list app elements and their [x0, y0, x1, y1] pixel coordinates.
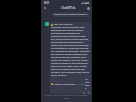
- staticText: Astuce : des sessions: [54, 83, 77, 86]
- staticText: courtes: [77, 83, 85, 86]
- staticText: Explique-moi la photosynthèse ?: [54, 13, 88, 16]
- staticText: Bien sûr ! Voici les: [54, 23, 73, 26]
- button[interactable]: Explique-moi la photosynthèse ?: [54, 13, 88, 16]
- button[interactable]: Profile: [87, 7, 90, 10]
- button[interactable]: Open menu: [43, 6, 47, 10]
- button[interactable]: Edit message: [88, 17, 90, 19]
- staticText: ChatGPT 4o: [61, 6, 76, 10]
- staticText: et régulières.: [85, 78, 90, 90]
- button[interactable]: Bien sûr ! Voici les: [51, 23, 90, 90]
- staticText: ChatGPT peut faire des erreurs. Envisage…: [44, 94, 89, 101]
- button[interactable]: Share: [87, 91, 90, 94]
- staticText: méthodes les plus efficaces pour apprend…: [51, 26, 90, 77]
- staticText: 9:41: [44, 1, 50, 5]
- button[interactable]: Copy: [82, 91, 85, 94]
